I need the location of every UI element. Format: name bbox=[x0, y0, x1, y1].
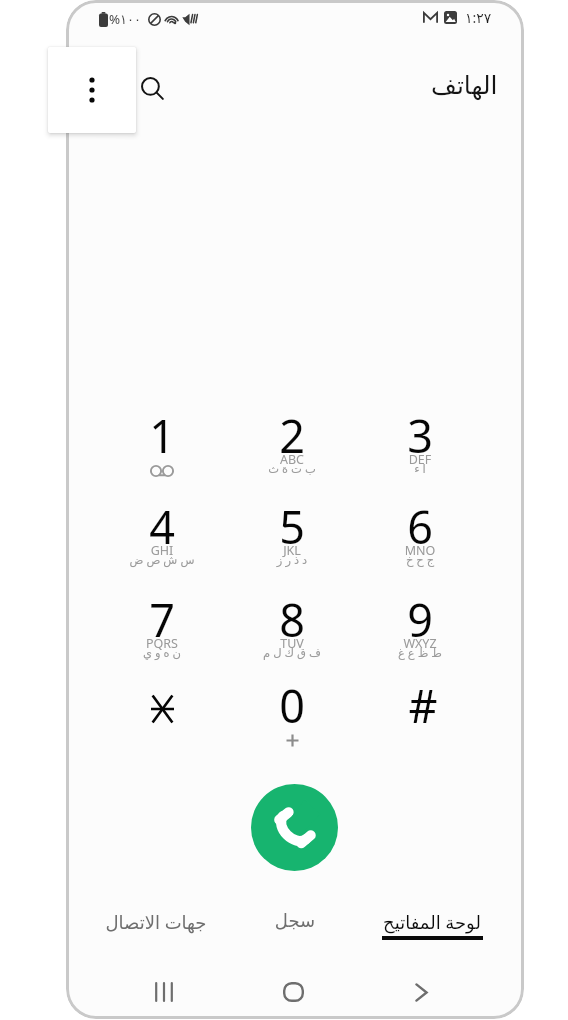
staticText: 1 bbox=[104, 405, 220, 466]
staticText: ج ح خ bbox=[362, 552, 478, 568]
staticText: 3 bbox=[362, 405, 478, 466]
staticText: لوحة المفاتيح bbox=[362, 910, 502, 935]
button[interactable]: Back bbox=[393, 964, 449, 1019]
staticText: 7 bbox=[104, 589, 220, 650]
staticText: ١:٢٧ bbox=[465, 8, 492, 27]
staticText: 2 bbox=[234, 405, 350, 466]
staticText: WXYZ bbox=[362, 635, 478, 652]
button[interactable]: سجل bbox=[225, 900, 365, 948]
button[interactable]: 1 bbox=[104, 405, 220, 501]
staticText: DEF bbox=[362, 451, 478, 468]
staticText: TUV bbox=[234, 635, 350, 652]
staticText: GHI bbox=[104, 542, 220, 559]
staticText: 9 bbox=[362, 589, 478, 650]
button[interactable]: 8 bbox=[234, 589, 350, 685]
staticText: الهاتف bbox=[431, 71, 498, 100]
button[interactable]: 7 bbox=[104, 589, 220, 685]
button[interactable]: لوحة المفاتيح bbox=[362, 900, 502, 948]
staticText: ط ظ ع غ bbox=[362, 645, 478, 661]
button[interactable]: Recent apps bbox=[136, 964, 192, 1019]
staticText: # bbox=[365, 675, 481, 736]
staticText: ABC bbox=[234, 451, 350, 468]
staticText: ا ء bbox=[362, 461, 478, 477]
button[interactable]: Home bbox=[265, 964, 321, 1019]
button[interactable]: Pound bbox=[362, 675, 478, 771]
button[interactable]: 6 bbox=[362, 496, 478, 592]
staticText: 6 bbox=[362, 496, 478, 557]
button[interactable]: Call bbox=[251, 784, 338, 871]
button[interactable]: 5 bbox=[234, 496, 350, 592]
button[interactable]: Search bbox=[130, 66, 174, 110]
staticText: سجل bbox=[225, 910, 365, 931]
staticText: د ذ ر ز bbox=[234, 552, 350, 568]
staticText: 8 bbox=[234, 589, 350, 650]
staticText: 5 bbox=[234, 496, 350, 557]
staticText: ف ق ك ل م bbox=[234, 645, 350, 661]
button[interactable]: 0 bbox=[234, 675, 350, 771]
staticText: MNO bbox=[362, 542, 478, 559]
button[interactable]: 2 bbox=[234, 405, 350, 501]
staticText: JKL bbox=[234, 542, 350, 559]
button[interactable]: More options bbox=[48, 47, 136, 133]
staticText: ب ت ة ث bbox=[234, 461, 350, 477]
staticText: جهات الاتصال bbox=[86, 910, 226, 935]
button[interactable]: جهات الاتصال bbox=[86, 900, 226, 948]
staticText: ن ه و ي bbox=[104, 645, 220, 661]
staticText: PQRS bbox=[104, 635, 220, 652]
staticText: 0 bbox=[234, 675, 350, 736]
staticText: %١٠٠ bbox=[109, 10, 142, 28]
button[interactable]: 3 bbox=[362, 405, 478, 501]
button[interactable]: 4 bbox=[104, 496, 220, 592]
staticText: 4 bbox=[104, 496, 220, 557]
staticText: س ش ص ض bbox=[104, 552, 220, 568]
button[interactable]: Star bbox=[104, 675, 220, 771]
button[interactable]: 9 bbox=[362, 589, 478, 685]
